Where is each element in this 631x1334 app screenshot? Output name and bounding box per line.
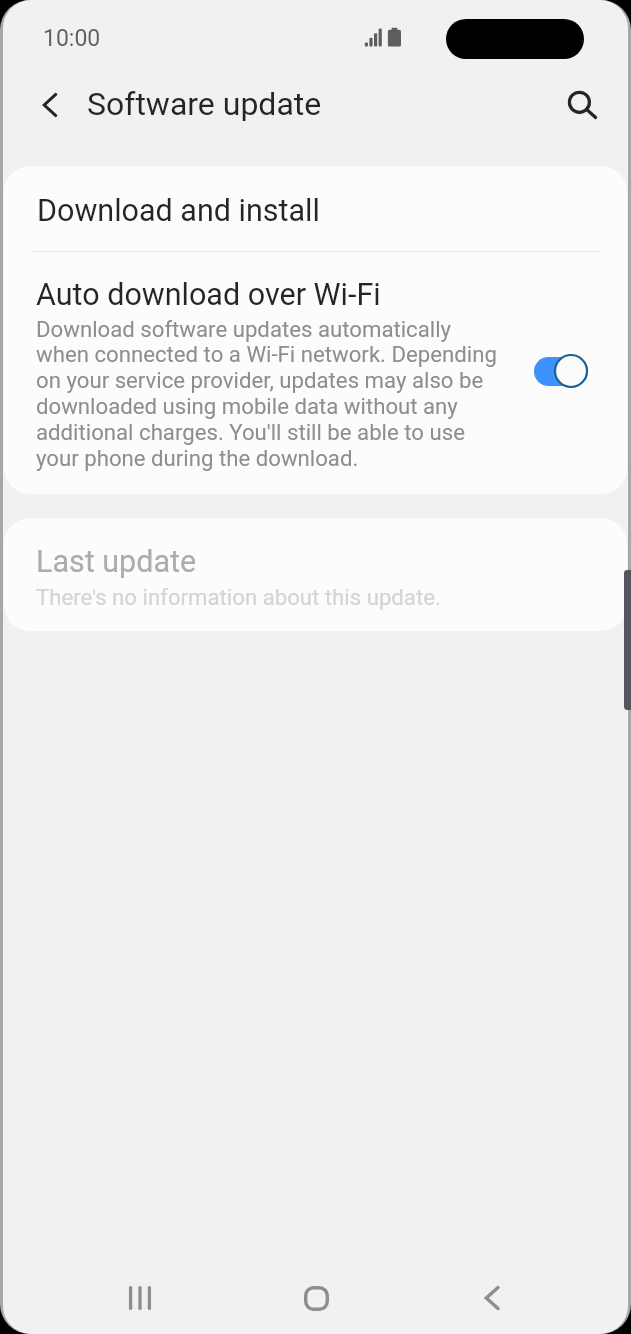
staticText: Last update [36,544,197,580]
staticText: Software update [87,85,322,123]
button[interactable]: Back [448,1262,536,1334]
staticText: Download software updates automatically … [36,316,506,472]
staticText: Auto download over Wi-Fi [36,277,381,313]
staticText: There's no information about this update… [36,584,441,610]
button[interactable]: Auto download over Wi-Fi [4,252,627,494]
button[interactable]: Download and install [4,166,627,251]
button[interactable]: Home [272,1262,360,1334]
button[interactable]: Navigate up [19,74,81,136]
staticText: 10:00 [43,25,101,52]
staticText: Download and install [37,193,320,229]
button[interactable]: Auto download over Wi-Fi [532,353,592,389]
button[interactable]: Search [548,71,610,133]
button[interactable]: Recent apps [96,1262,184,1334]
button[interactable]: Last update [4,518,627,631]
